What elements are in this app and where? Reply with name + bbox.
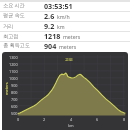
staticText: 600 — [11, 104, 18, 109]
staticText: 2 — [43, 117, 46, 122]
staticText: 904 — [44, 41, 57, 50]
staticText: meters — [59, 43, 77, 50]
staticText: 1218 — [44, 31, 61, 40]
staticText: 900 — [11, 83, 18, 88]
staticText: 500 — [11, 111, 18, 116]
staticText: 총 획득고도 — [3, 42, 30, 49]
staticText: 700 — [11, 97, 18, 102]
staticText: 평균 속도 — [3, 12, 25, 19]
staticText: meters — [4, 82, 9, 95]
staticText: 4 — [70, 117, 73, 122]
staticText: 고도 — [65, 57, 73, 62]
button[interactable]: 총 획득고도 — [0, 41, 130, 51]
button[interactable]: 평균 속도 — [0, 11, 130, 21]
staticText: 800 — [11, 90, 18, 95]
staticText: 03:53:51 — [44, 1, 73, 10]
staticText: 최고점 — [3, 33, 19, 39]
staticText: 1300 — [9, 55, 18, 60]
staticText: km — [57, 23, 65, 30]
staticText: 소요 시간 — [3, 2, 25, 9]
staticText: km — [68, 123, 74, 128]
button[interactable]: 최고점 — [0, 31, 130, 41]
staticText: 2.6 — [44, 11, 55, 20]
staticText: meters — [63, 33, 81, 40]
staticText: km/h — [57, 13, 70, 20]
staticText: 1100 — [9, 69, 18, 74]
staticText: 9.2 — [44, 21, 55, 30]
staticText: 1000 — [9, 76, 18, 81]
button[interactable]: 거리 — [0, 21, 130, 31]
staticText: 1200 — [9, 62, 18, 67]
button[interactable]: 소요 시간 — [0, 1, 130, 11]
staticText: 0 — [17, 117, 20, 122]
staticText: 8 — [123, 117, 126, 122]
button[interactable]: 1300 — [2, 52, 128, 130]
staticText: 6 — [96, 117, 99, 122]
staticText: 거리 — [3, 23, 14, 29]
